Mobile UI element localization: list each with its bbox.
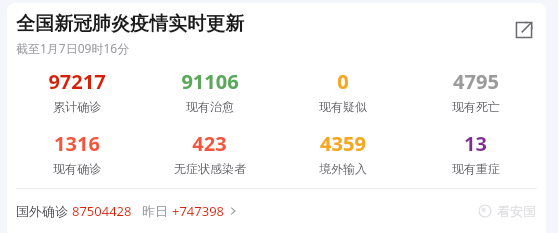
staticText: 91106: [181, 68, 239, 95]
button[interactable]: 423: [143, 130, 276, 176]
staticText: 国外确诊: [16, 202, 72, 220]
staticText: 现有重症: [452, 161, 500, 176]
staticText: 现有疑似: [319, 99, 367, 114]
staticText: 97217: [48, 68, 106, 95]
button[interactable]: 4359: [276, 130, 409, 176]
staticText: 现有治愈: [186, 99, 234, 114]
staticText: 4359: [320, 130, 366, 157]
staticText: 4795: [453, 68, 499, 95]
staticText: 423: [192, 130, 227, 157]
staticText: 昨日: [142, 202, 172, 220]
staticText: 0: [337, 68, 349, 95]
button[interactable]: 4795: [409, 68, 542, 114]
staticText: 截至1月7日09时16分: [16, 40, 130, 56]
button[interactable]: 13: [409, 130, 542, 176]
staticText: 现有确诊: [53, 161, 101, 176]
staticText: 看安国: [497, 203, 536, 219]
staticText: 现有死亡: [452, 99, 500, 114]
button[interactable]: 国外确诊: [16, 202, 238, 220]
button[interactable]: 0: [276, 68, 409, 114]
staticText: 全国新冠肺炎疫情实时更新: [16, 12, 244, 36]
button[interactable]: 97217: [11, 68, 143, 114]
button[interactable]: 1316: [11, 130, 143, 176]
button[interactable]: Open in new window: [510, 16, 538, 44]
staticText: 累计确诊: [53, 99, 101, 114]
staticText: 1316: [54, 130, 100, 157]
staticText: +747398: [172, 202, 225, 220]
staticText: 13: [464, 130, 487, 157]
staticText: 无症状感染者: [174, 161, 246, 176]
button[interactable]: 91106: [143, 68, 276, 114]
staticText: 87504428: [72, 202, 132, 220]
staticText: 境外输入: [319, 161, 367, 176]
